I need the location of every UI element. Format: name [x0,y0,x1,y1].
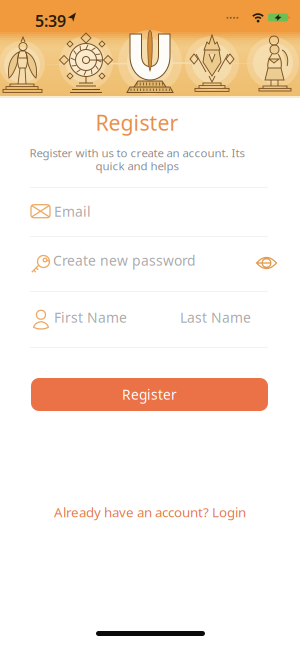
staticText: Last Name [180,308,251,327]
staticText: 5:39 [35,10,66,32]
staticText: Register with us to create an account. I… [29,145,244,161]
button[interactable]: Create new password [30,246,250,286]
button[interactable]: Last Name [180,303,276,339]
button[interactable]: Already have an account? Login [0,503,300,521]
button[interactable]: Register [31,378,268,411]
button[interactable]: First Name [30,303,160,339]
staticText: First Name [54,308,127,327]
staticText: Already have an account? Login [54,503,246,521]
staticText: quick and helps [95,158,178,174]
staticText: Create new password [53,251,196,270]
staticText: Register [122,385,177,404]
staticText: Register [95,108,178,137]
button[interactable]: Show password [251,251,282,274]
button[interactable]: Email [30,192,268,232]
staticText: Email [54,202,91,221]
